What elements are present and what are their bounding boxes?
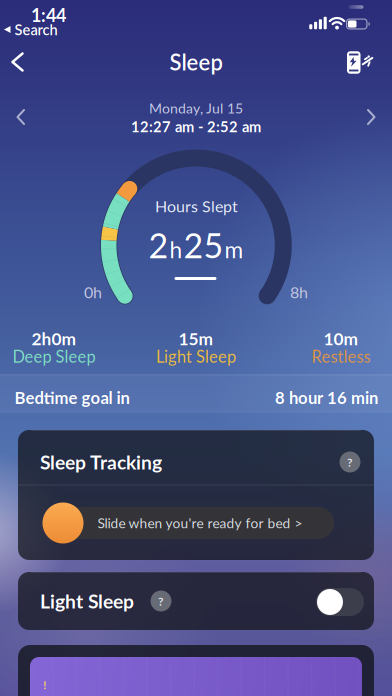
staticText: 8 hour 16 min bbox=[275, 387, 378, 407]
staticText: h bbox=[169, 236, 182, 263]
staticText: Sleep bbox=[169, 49, 222, 75]
staticText: Sleep Tracking bbox=[40, 450, 162, 474]
staticText: ? bbox=[158, 594, 164, 608]
staticText: Restless bbox=[311, 347, 370, 366]
button[interactable]: Help bbox=[340, 452, 360, 472]
button[interactable]: Phone battery status bbox=[343, 51, 373, 75]
staticText: 12:27 am - 2:52 am bbox=[131, 118, 261, 135]
staticText: Search bbox=[14, 21, 57, 38]
staticText: Light Sleep bbox=[156, 347, 236, 366]
staticText: 25 bbox=[183, 225, 223, 265]
button[interactable]: Sleep graph bbox=[30, 657, 362, 696]
staticText: Light Sleep bbox=[40, 589, 134, 613]
button[interactable]: Previous day bbox=[16, 108, 26, 125]
button[interactable]: Help bbox=[151, 591, 171, 611]
staticText: 0h bbox=[84, 282, 102, 302]
staticText: 2 bbox=[148, 225, 168, 265]
button[interactable]: Next day bbox=[366, 108, 376, 125]
staticText: Hours Slept bbox=[155, 196, 238, 216]
button[interactable]: Back bbox=[10, 51, 26, 72]
staticText: 10m bbox=[323, 328, 358, 349]
staticText: 2h0m bbox=[31, 328, 76, 349]
staticText: Deep Sleep bbox=[12, 347, 95, 366]
staticText: m bbox=[224, 236, 243, 263]
staticText: Slide when you're ready for bed > bbox=[97, 515, 302, 531]
staticText: Bedtime goal in bbox=[14, 387, 129, 407]
button[interactable]: Slide when you're ready for bed bbox=[48, 502, 340, 544]
staticText: 15m bbox=[178, 328, 213, 349]
staticText: ! bbox=[43, 679, 46, 691]
staticText: 8h bbox=[290, 282, 308, 302]
staticText: 1:44 bbox=[31, 4, 66, 26]
button[interactable]: Light Sleep toggle bbox=[316, 588, 364, 616]
staticText: Monday, Jul 15 bbox=[149, 100, 243, 116]
staticText: ? bbox=[347, 455, 353, 469]
button[interactable]: Back to Search bbox=[2, 21, 57, 38]
